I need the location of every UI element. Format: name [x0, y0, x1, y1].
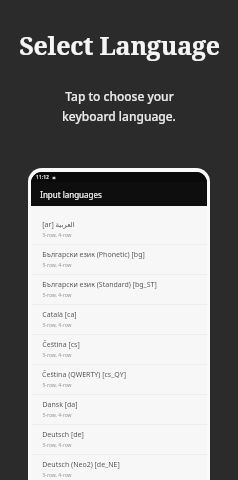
- button[interactable]: Input languages: [31, 182, 207, 206]
- button[interactable]: Dansk [da]: [31, 395, 207, 425]
- staticText: Čeština (QWERTY) [cs_QY]: [42, 370, 126, 380]
- button[interactable]: Català [ca]: [31, 305, 207, 335]
- button[interactable]: Български език (Phonetic) [bg]: [31, 245, 207, 275]
- staticText: 5-row, 4-row: [42, 382, 72, 389]
- staticText: Deutsch (Neo2) [de_NE]: [42, 460, 120, 470]
- staticText: Български език (Standard) [bg_ST]: [42, 280, 157, 290]
- staticText: Tap to choose your: [65, 88, 174, 104]
- staticText: Input languages: [40, 189, 102, 200]
- staticText: 5-row, 4-row: [42, 262, 72, 269]
- button[interactable]: Čeština [cs]: [31, 335, 207, 365]
- staticText: keyboard language.: [62, 108, 176, 124]
- staticText: 5-row, 4-row: [42, 412, 72, 419]
- staticText: 5-row, 4-row: [42, 232, 72, 239]
- staticText: Select Language: [19, 28, 220, 62]
- button[interactable]: Čeština (QWERTY) [cs_QY]: [31, 365, 207, 395]
- button[interactable]: Deutsch [de]: [31, 425, 207, 455]
- staticText: Български език (Phonetic) [bg]: [42, 250, 145, 260]
- staticText: Čeština [cs]: [42, 340, 80, 350]
- staticText: 5-row, 4-row: [42, 292, 72, 299]
- button[interactable]: Deutsch (Neo2) [de_NE]: [31, 455, 207, 480]
- staticText: Deutsch [de]: [42, 430, 84, 440]
- staticText: 5-row, 4-row: [42, 472, 72, 479]
- staticText: 5-row, 4-row: [42, 352, 72, 359]
- staticText: 11:12: [36, 174, 49, 181]
- staticText: Català [ca]: [42, 310, 77, 320]
- staticText: [ar] العربية: [42, 220, 75, 230]
- staticText: Dansk [da]: [42, 400, 78, 410]
- staticText: 5-row, 4-row: [42, 442, 72, 449]
- button[interactable]: Български език (Standard) [bg_ST]: [31, 275, 207, 305]
- staticText: 5-row, 4-row: [42, 322, 72, 329]
- button[interactable]: [ar] العربية: [31, 215, 207, 245]
